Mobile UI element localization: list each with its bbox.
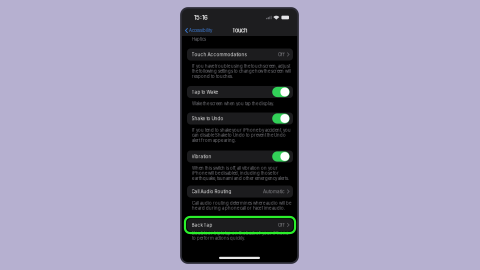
staticText: Wake the screen when you tap the display… bbox=[192, 101, 274, 106]
button[interactable]: Toggle bbox=[272, 151, 290, 162]
staticText: Touch Accommodations bbox=[192, 52, 247, 57]
staticText: Call Audio Routing bbox=[192, 189, 232, 194]
staticText: Tap to Wake bbox=[192, 89, 219, 95]
staticText: Touch bbox=[232, 27, 247, 34]
staticText: Haptics bbox=[192, 36, 206, 42]
staticText: Shake to Undo bbox=[192, 116, 224, 121]
button[interactable]: Call Audio Routing bbox=[187, 185, 293, 197]
button[interactable]: Accessibility bbox=[184, 26, 213, 35]
button[interactable]: Toggle bbox=[272, 87, 290, 97]
staticText: Off bbox=[278, 222, 285, 228]
staticText: Vibration bbox=[192, 154, 212, 159]
staticText: Back Tap bbox=[192, 222, 213, 228]
staticText: 15:16 bbox=[194, 14, 208, 21]
button[interactable]: Toggle bbox=[272, 113, 290, 124]
staticText: Accessibility bbox=[189, 28, 212, 33]
staticText: If you have trouble using the touchscree… bbox=[192, 63, 291, 79]
staticText: When this switch is off, all vibration o… bbox=[192, 165, 289, 181]
staticText: Call audio routing determines where audi… bbox=[192, 200, 291, 211]
button[interactable]: Back Tap bbox=[187, 219, 293, 231]
staticText: Automatic bbox=[263, 189, 285, 194]
staticText: Double or triple tap on the back of your… bbox=[192, 230, 288, 241]
button[interactable]: Touch Accommodations bbox=[187, 48, 293, 60]
staticText: Off bbox=[278, 52, 285, 57]
staticText: If you tend to shake your iPhone by acci… bbox=[192, 127, 291, 143]
